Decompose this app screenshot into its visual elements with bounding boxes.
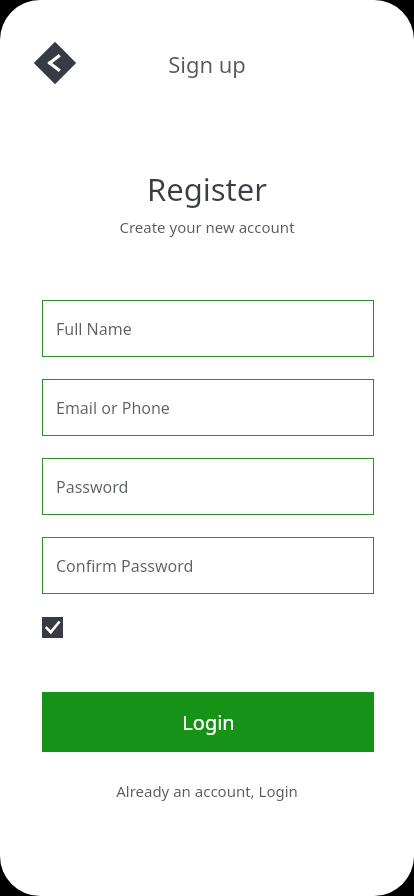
- staticText: Email or Phone: [56, 397, 170, 419]
- button[interactable]: Password: [42, 458, 374, 515]
- staticText: Confirm Password: [56, 555, 194, 577]
- button[interactable]: Email or Phone: [42, 379, 374, 436]
- staticText: Full Name: [56, 318, 132, 340]
- staticText: Login: [182, 709, 235, 736]
- staticText: Register: [0, 168, 414, 210]
- staticText: Sign up: [0, 49, 414, 79]
- button[interactable]: Full Name: [42, 300, 374, 357]
- button[interactable]: Already an account, Login: [112, 779, 302, 803]
- button[interactable]: Login: [42, 692, 374, 752]
- button[interactable]: Confirm Password: [42, 537, 374, 594]
- button[interactable]: Back: [34, 42, 76, 84]
- staticText: Password: [56, 476, 129, 498]
- staticText: Already an account, Login: [116, 781, 298, 801]
- staticText: Create your new account: [0, 217, 414, 237]
- button[interactable]: Accept terms: [42, 617, 63, 638]
